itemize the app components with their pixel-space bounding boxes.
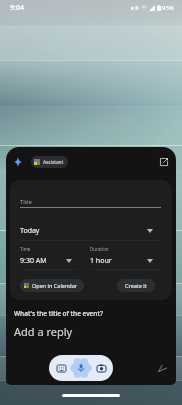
button[interactable]: Open in Calendar <box>20 279 84 292</box>
button[interactable]: Assistant <box>31 156 68 168</box>
staticText: Duration <box>90 246 109 252</box>
button[interactable]: Duration <box>90 246 161 270</box>
staticText: 9:30 AM <box>20 256 47 266</box>
staticText: Time <box>20 246 31 252</box>
staticText: 9:04 <box>10 3 24 13</box>
staticText: Assistant <box>43 159 64 166</box>
button[interactable]: Create it <box>117 279 155 292</box>
staticText: 1 hour <box>90 256 112 266</box>
button[interactable]: Camera <box>92 359 110 377</box>
button[interactable]: Time <box>20 246 78 270</box>
staticText: Add a reply <box>14 324 73 339</box>
staticText: Today <box>20 226 40 236</box>
staticText: Create it <box>125 282 147 289</box>
button[interactable]: Keyboard <box>52 359 70 377</box>
staticText: 95% <box>162 4 174 12</box>
staticText: What's the title of the event? <box>14 309 103 318</box>
button[interactable]: Open in new <box>154 152 174 172</box>
staticText: Open in Calendar <box>32 282 78 289</box>
staticText: Title <box>20 198 32 206</box>
button[interactable]: Microphone <box>70 357 92 379</box>
button[interactable]: Send <box>152 358 172 378</box>
button[interactable]: Today <box>20 226 161 236</box>
